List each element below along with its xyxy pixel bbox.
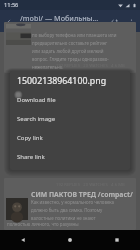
staticText: вопрос. Глядите треды одноразово- <box>32 56 109 62</box>
staticText: валостные политики не знают <box>31 215 96 221</box>
button[interactable]: Home <box>46 230 93 250</box>
button[interactable]: Copy link <box>10 128 130 147</box>
staticText: СИМ ПАКТОВ ТРЕД /compact/ <box>31 190 133 199</box>
button[interactable]: Refresh <box>107 15 121 29</box>
staticText: Search image <box>17 115 56 123</box>
staticText: предварительно составьте рейтинг <box>32 40 108 46</box>
button[interactable]: Recents <box>93 230 140 250</box>
staticText: 15002138964100.png <box>17 75 107 87</box>
staticText: Download file <box>17 96 56 104</box>
staticText: /mobi/ — Мобильны... <box>20 13 99 23</box>
staticText: Как известно, у нормального человека <box>31 199 115 205</box>
staticText: 192 REPLIES 20 WATCHES 4.6 MB <box>56 63 125 69</box>
button[interactable]: Back <box>0 230 46 250</box>
staticText: по выбору телефона или планшета или <box>32 32 117 38</box>
button[interactable]: по выбору телефона или планшета или <box>4 22 136 73</box>
button[interactable]: Share link <box>10 147 130 166</box>
staticText: Share link <box>17 153 45 161</box>
staticText: нежелательно. <box>32 64 64 70</box>
button[interactable]: More options <box>124 15 138 29</box>
button[interactable]: 192 REPLIES 20 WATCHES 4.6 MB <box>4 178 136 230</box>
button[interactable]: Download file <box>10 90 130 109</box>
staticText: должно быть два симка. Поэтому <box>31 207 103 213</box>
staticText: 11:56 <box>4 1 19 9</box>
staticText: 13 постов и 7 тредов <box>20 23 67 29</box>
button[interactable]: Search image <box>10 109 130 128</box>
staticText: Copy link <box>17 134 43 142</box>
button[interactable]: Back <box>3 15 17 29</box>
staticText: полностью личного, что разумны <box>7 221 79 227</box>
staticText: или задать любой другой мелкий <box>32 48 104 54</box>
